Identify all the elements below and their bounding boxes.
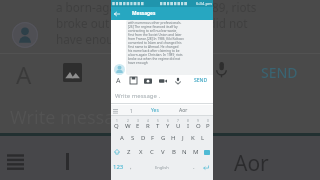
button[interactable]: H bbox=[168, 131, 178, 145]
staticText: 9 bbox=[197, 119, 199, 123]
button[interactable]: 8 bbox=[183, 117, 193, 131]
staticText: I bbox=[187, 122, 190, 130]
staticText: A bbox=[16, 58, 32, 90]
staticText: C bbox=[150, 148, 154, 156]
button[interactable]: English bbox=[136, 159, 188, 175]
staticText: 8 bbox=[187, 119, 189, 123]
staticText: O bbox=[196, 122, 201, 130]
button[interactable]: Voice input bbox=[213, 61, 230, 78]
staticText: with numerous other professionals. bbox=[128, 21, 182, 25]
button[interactable]: X bbox=[135, 145, 146, 159]
button[interactable]: 123 bbox=[111, 159, 125, 175]
staticText: A bbox=[120, 134, 124, 142]
button[interactable]: S bbox=[127, 131, 138, 145]
button[interactable]: 3 bbox=[133, 117, 143, 131]
button[interactable]: K bbox=[188, 131, 198, 145]
staticText: Yes bbox=[151, 107, 159, 114]
staticText: have enough bbox=[56, 31, 128, 47]
staticText: 1 bbox=[130, 108, 133, 114]
button[interactable]: Backspace bbox=[201, 145, 213, 159]
staticText: his name back after claiming to be bbox=[128, 49, 180, 53]
staticText: first from the Soviet Union and later bbox=[128, 33, 182, 37]
button[interactable]: C bbox=[146, 145, 157, 159]
staticText: T bbox=[156, 122, 160, 130]
staticText: . bbox=[193, 163, 195, 171]
staticText: 6 bbox=[167, 119, 169, 123]
button[interactable]: Back bbox=[114, 11, 120, 17]
staticText: E bbox=[136, 122, 140, 130]
staticText: SEND bbox=[261, 63, 298, 82]
staticText: SEND bbox=[194, 77, 208, 84]
button[interactable]: . bbox=[188, 159, 199, 175]
staticText: X bbox=[139, 148, 143, 156]
staticText: D bbox=[141, 134, 146, 142]
button[interactable]: G bbox=[158, 131, 168, 145]
button[interactable]: , bbox=[125, 159, 136, 175]
staticText: 5 bbox=[157, 119, 159, 123]
staticText: contracting to sell nuclear waste, bbox=[128, 29, 178, 33]
staticText: [26] The regime financed itself by bbox=[128, 25, 178, 29]
button[interactable]: D bbox=[138, 131, 148, 145]
button[interactable]: A bbox=[116, 131, 127, 145]
staticText: 1 bbox=[116, 119, 118, 123]
staticText: N bbox=[182, 148, 187, 156]
button[interactable]: 7 bbox=[173, 117, 183, 131]
button[interactable]: Enter bbox=[199, 159, 213, 175]
staticText: 123 bbox=[113, 163, 124, 171]
staticText: Aor bbox=[179, 107, 188, 114]
button[interactable]: A bbox=[0, 54, 320, 86]
staticText: Q bbox=[114, 122, 119, 130]
button[interactable]: 0 bbox=[203, 117, 213, 131]
staticText: broke out when the regime did not bbox=[128, 57, 181, 61]
staticText: have enough bbox=[128, 61, 148, 65]
button[interactable]: 1 bbox=[111, 117, 122, 131]
staticText: G bbox=[161, 134, 166, 142]
button[interactable]: 5 bbox=[153, 117, 163, 131]
staticText: Z bbox=[127, 148, 131, 156]
button[interactable]: 6 bbox=[163, 117, 173, 131]
staticText: 0 bbox=[207, 119, 209, 123]
staticText: R bbox=[146, 122, 150, 130]
staticText: a born-again Christian. In 1989, riots bbox=[56, 0, 257, 15]
staticText: Y bbox=[166, 122, 170, 130]
button[interactable]: Recents bbox=[7, 154, 24, 169]
staticText: F bbox=[151, 134, 155, 142]
staticText: first name to Ahmad. He changed bbox=[128, 45, 179, 49]
staticText: A bbox=[116, 76, 121, 86]
staticText: from France.[28] In 1986, Kiki Koltoov bbox=[128, 37, 184, 41]
staticText: V bbox=[161, 148, 165, 156]
button[interactable]: N bbox=[179, 145, 190, 159]
staticText: U bbox=[176, 122, 181, 130]
staticText: J bbox=[182, 134, 184, 142]
button[interactable]: L bbox=[198, 131, 208, 145]
button[interactable]: 4 bbox=[143, 117, 153, 131]
staticText: W bbox=[125, 122, 131, 130]
button[interactable]: 2 bbox=[122, 117, 133, 131]
button[interactable]: Z bbox=[123, 145, 135, 159]
staticText: B bbox=[172, 148, 176, 156]
staticText: L bbox=[201, 134, 205, 142]
staticText: 7 bbox=[177, 119, 179, 123]
staticText: S bbox=[131, 134, 135, 142]
button[interactable]: Aor bbox=[234, 149, 269, 178]
button[interactable]: Shift bbox=[111, 145, 123, 159]
staticText: P bbox=[206, 122, 210, 130]
staticText: 2 bbox=[127, 119, 129, 123]
staticText: Write message bbox=[10, 105, 136, 130]
button[interactable]: F bbox=[148, 131, 158, 145]
staticText: 3 bbox=[137, 119, 139, 123]
staticText: Messages bbox=[132, 10, 156, 17]
button[interactable]: V bbox=[157, 145, 168, 159]
button[interactable]: B bbox=[168, 145, 179, 159]
button[interactable]: Contact avatar bbox=[12, 22, 38, 48]
staticText: , bbox=[130, 163, 132, 171]
button[interactable]: J bbox=[178, 131, 188, 145]
button[interactable]: 9 bbox=[193, 117, 203, 131]
button[interactable]: M bbox=[190, 145, 201, 159]
staticText: converted to Islam and changed his bbox=[128, 41, 182, 45]
staticText: 6:34 pm bbox=[196, 1, 212, 7]
staticText: broke out when the regime did not bbox=[56, 15, 248, 31]
staticText: Write message . bbox=[115, 92, 161, 100]
staticText: M bbox=[193, 148, 199, 156]
